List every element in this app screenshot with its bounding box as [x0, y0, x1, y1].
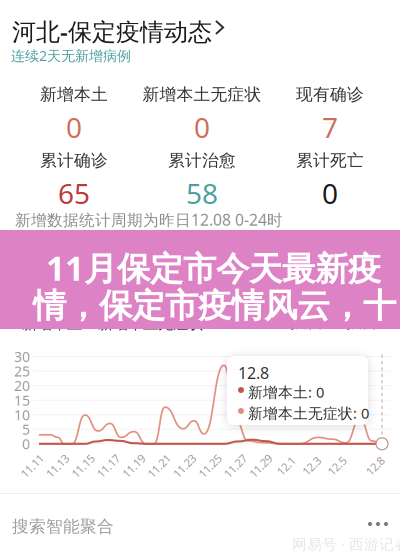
staticText: 30	[14, 347, 30, 366]
staticText: 搜索智能聚合	[12, 516, 114, 537]
staticText: 11月保定市今天最新疫	[46, 245, 381, 290]
staticText: 12.8	[238, 362, 269, 384]
staticText: 11.27	[222, 458, 249, 474]
button[interactable]: 搜索智能聚合	[12, 505, 388, 543]
staticText: 新增本土无症状	[98, 314, 203, 333]
staticText: 新增本土: 0	[248, 382, 324, 402]
staticText: 10	[14, 405, 30, 424]
staticText: 25	[14, 362, 30, 381]
staticText: 累计治愈	[168, 150, 236, 171]
button[interactable]: 河北-保定疫情动态	[12, 11, 252, 47]
staticText: 新增本土	[22, 314, 82, 333]
staticText: 15	[14, 391, 30, 410]
staticText: 0	[322, 174, 338, 212]
staticText: 11.11	[18, 458, 45, 474]
staticText: 12.3	[301, 458, 322, 474]
staticText: 新增本土无症状	[142, 84, 261, 105]
staticText: 河北-保定疫情动态	[12, 15, 212, 48]
button[interactable]: 按日	[284, 310, 330, 334]
staticText: 情，保定市疫情风云，十	[33, 285, 396, 327]
staticText: 12.8	[364, 458, 385, 474]
staticText: 65	[58, 174, 90, 212]
staticText: 58	[186, 174, 218, 212]
staticText: 新增数据统计周期为昨日12.08 0-24时	[15, 209, 283, 230]
staticText: 按月	[346, 311, 380, 332]
staticText: 全域无疫情地区	[12, 257, 131, 279]
staticText: 累计确诊	[40, 150, 108, 171]
staticText: 累计死亡	[296, 150, 364, 171]
staticText: 0	[194, 108, 210, 146]
staticText: 现有确诊	[296, 84, 364, 105]
staticText: 0	[66, 108, 82, 146]
staticText: 11.21	[145, 458, 172, 474]
staticText: 20	[14, 376, 30, 395]
staticText: 11.25	[196, 458, 223, 474]
staticText: 11.15	[69, 458, 96, 474]
staticText: 11.19	[120, 458, 147, 474]
staticText: 12.5	[326, 458, 347, 474]
staticText: 7	[322, 108, 338, 146]
staticText: 新增本土无症状: 0	[248, 403, 369, 423]
staticText: 按日	[290, 311, 324, 332]
staticText: 11.17	[95, 458, 122, 474]
staticText: 连续2天无新增病例	[11, 46, 131, 65]
staticText: 12.1	[276, 458, 297, 474]
staticText: 新增本土	[40, 84, 108, 105]
button[interactable]: 全域无疫情地区	[12, 248, 388, 284]
staticText: 0	[22, 434, 30, 453]
button[interactable]: 按月	[340, 310, 386, 334]
staticText: 5	[22, 420, 30, 439]
staticText: 11.29	[247, 458, 274, 474]
staticText: 11.13	[44, 458, 71, 474]
staticText: 网易号 · 西游记者	[292, 534, 400, 554]
staticText: 11.23	[171, 458, 198, 474]
